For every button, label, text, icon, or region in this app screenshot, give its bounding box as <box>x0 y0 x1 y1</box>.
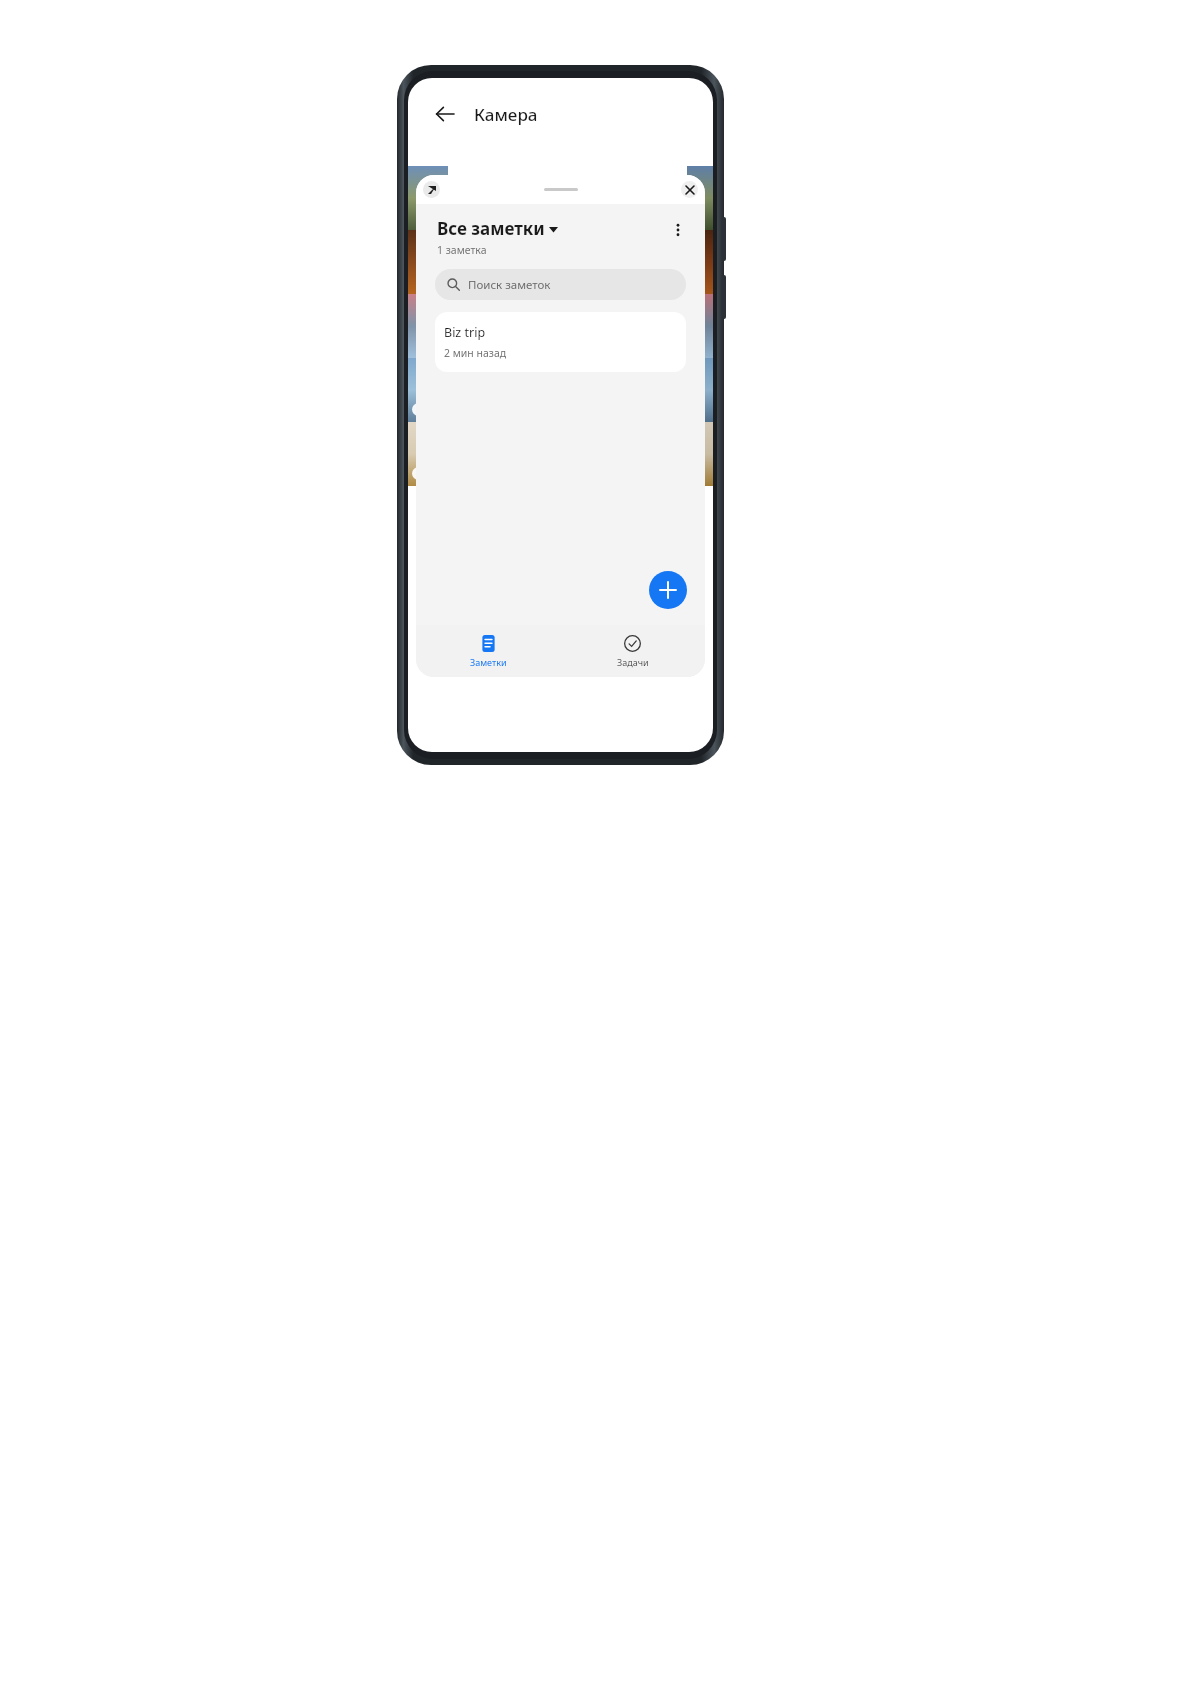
button[interactable]: Photo <box>408 422 448 486</box>
staticText: Поиск заметок <box>468 277 551 293</box>
button[interactable]: Photo <box>687 166 713 230</box>
button[interactable]: Add note <box>649 571 687 609</box>
button[interactable]: Задачи <box>560 625 705 677</box>
button[interactable]: Resize window <box>423 181 440 198</box>
button[interactable]: Photo <box>687 230 713 294</box>
button[interactable]: Заметки <box>416 625 560 677</box>
staticText: 2 мин назад <box>444 346 507 360</box>
staticText: Заметки <box>470 656 507 668</box>
button[interactable]: Photo <box>408 294 448 358</box>
staticText: Камера <box>474 103 538 126</box>
staticText: Biz trip <box>444 324 486 341</box>
button[interactable]: Photo <box>687 422 713 486</box>
staticText: 1 заметка <box>437 243 487 257</box>
staticText: Задачи <box>617 656 649 668</box>
button[interactable]: Photo <box>687 294 713 358</box>
button[interactable]: Поиск заметок <box>435 269 686 300</box>
staticText: Все заметки <box>437 217 545 240</box>
button[interactable]: Photo <box>408 166 448 230</box>
button[interactable]: Photo <box>408 230 448 294</box>
button[interactable]: Back <box>428 97 462 131</box>
button[interactable]: Biz trip <box>435 312 686 372</box>
button[interactable]: Close <box>681 181 698 198</box>
button[interactable]: Photo <box>687 358 713 422</box>
button[interactable]: Photo <box>408 358 448 422</box>
button[interactable]: More options <box>665 217 691 243</box>
